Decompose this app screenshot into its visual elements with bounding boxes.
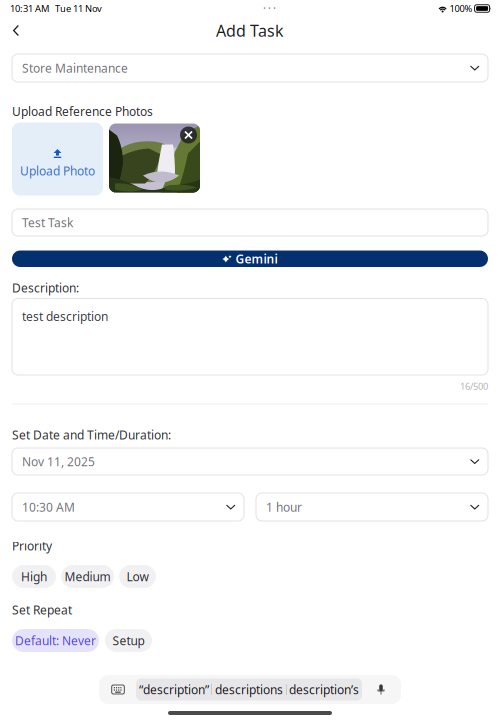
button[interactable]: 10:30 AM [12,493,244,521]
staticText: 10:31 AM [10,2,49,15]
staticText: Priority [12,538,52,554]
staticText: 16/500 [460,380,488,392]
button[interactable]: Low [119,565,156,588]
staticText: Upload Reference Photos [12,103,153,119]
staticText: High [21,568,47,584]
staticText: Tue 11 Nov [49,2,102,15]
staticText: Medium [64,568,110,584]
button[interactable]: High [12,565,56,588]
button[interactable]: Test Task [12,209,488,236]
staticText: Upload Photo [20,163,95,179]
staticText: Store Maintenance [22,60,128,76]
staticText: Nov 11, 2025 [22,453,95,469]
button[interactable]: descriptions [212,678,286,700]
staticText: “description” [139,681,209,697]
button[interactable]: Setup [105,629,152,652]
staticText: descriptions [215,681,283,697]
button[interactable]: description’s [287,678,361,700]
staticText: 10:30 AM [22,499,75,515]
staticText: Set Date and Time/Duration: [12,427,171,443]
button[interactable]: Medium [61,565,114,588]
staticText: 100% [448,2,475,15]
staticText: Default: Never [15,632,96,648]
staticText: • • • [263,4,276,13]
button[interactable]: Gemini [12,250,488,267]
staticText: Gemini [236,251,278,267]
button[interactable]: Default: Never [12,629,99,652]
button[interactable]: Store Maintenance [12,54,488,82]
staticText: Low [126,568,148,584]
staticText: Description: [12,280,79,296]
staticText: Setup [112,632,144,648]
button[interactable]: Back [4,18,28,42]
button[interactable]: Upload Photo [12,122,103,195]
button[interactable]: Nov 11, 2025 [12,448,488,475]
staticText: test description [22,308,108,324]
button[interactable]: Keyboard settings [100,675,136,704]
staticText: Test Task [22,214,73,230]
button[interactable]: 1 hour [256,493,488,521]
staticText: Add Task [216,20,284,41]
button[interactable]: Dictate [362,675,400,704]
button[interactable]: “description” [137,678,211,700]
staticText: 1 hour [266,499,302,515]
staticText: description’s [289,681,359,697]
button[interactable]: Remove photo [180,126,197,143]
staticText: Set Repeat [12,602,72,618]
